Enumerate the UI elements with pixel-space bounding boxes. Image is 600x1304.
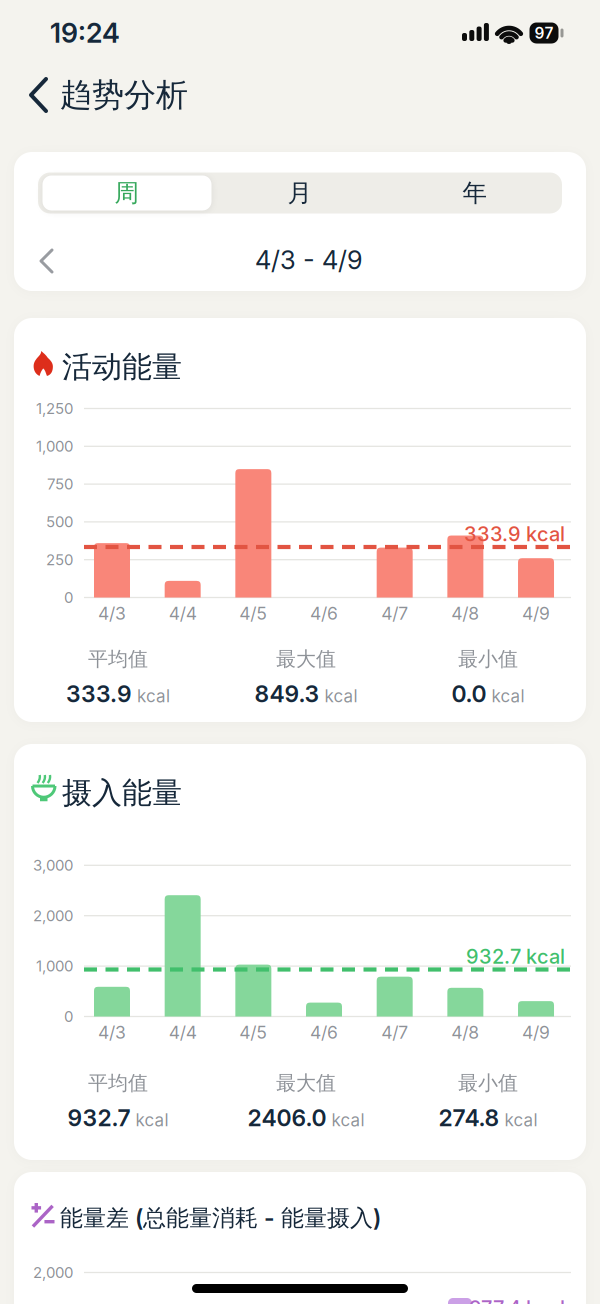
staticText: 274.8 [438,1104,499,1131]
staticText: 3,000 [33,856,73,874]
staticText: 4/4 [169,603,197,624]
staticText: kcal [504,1110,537,1130]
staticText: 4/3 - 4/9 [255,245,363,275]
staticText: 97 [534,24,553,42]
staticText: 0 [64,589,73,606]
staticText: 4/9 [522,1022,550,1043]
staticText: 趋势分析 [60,75,188,115]
staticText: 977.4 kcal [469,1296,565,1304]
staticText: 4/3 [98,603,126,624]
staticText: 4/4 [169,1022,197,1043]
staticText: 1,000 [36,437,73,455]
staticText: 1,000 [36,957,73,975]
staticText: kcal [135,1110,168,1130]
button[interactable]: 月 [215,172,385,213]
staticText: 333.9 [66,680,132,707]
staticText: 4/9 [522,603,550,624]
staticText: 932.7 kcal [466,945,565,968]
staticText: 4/8 [451,1022,479,1043]
staticText: 932.7 [67,1104,130,1131]
staticText: 月 [287,178,312,208]
staticText: 能量差 (总能量消耗 - 能量摄入) [60,1204,381,1232]
staticText: kcal [491,686,524,706]
staticText: 平均值 [88,647,148,671]
staticText: 750 [47,475,73,493]
staticText: 4/5 [239,603,267,624]
staticText: 4/3 [98,1022,126,1043]
staticText: kcal [324,686,357,706]
staticText: 4/6 [310,1022,338,1043]
button[interactable]: 年 [390,172,560,213]
staticText: 周 [114,178,139,208]
staticText: 4/8 [451,603,479,624]
staticText: 2406.0 [247,1104,326,1131]
staticText: 500 [46,513,73,531]
staticText: 年 [462,178,487,208]
staticText: 最小值 [458,647,518,671]
button[interactable]: 返回 [19,75,59,115]
staticText: 250 [46,551,73,569]
staticText: 0 [64,1008,73,1025]
staticText: 2,000 [33,907,73,925]
staticText: 849.3 [254,680,319,707]
staticText: 0.0 [451,680,486,707]
button[interactable]: 周 [42,175,211,210]
staticText: 1,250 [36,400,73,417]
staticText: 19:24 [50,17,120,49]
staticText: 333.9 kcal [464,522,565,546]
staticText: 4/6 [310,603,338,624]
staticText: 4/7 [381,603,408,624]
staticText: 摄入能量 [62,775,182,811]
staticText: 4/5 [239,1022,267,1043]
staticText: 4/7 [381,1022,408,1043]
staticText: 最小值 [458,1071,518,1095]
staticText: kcal [331,1110,364,1130]
staticText: 最大值 [276,1071,336,1095]
staticText: 平均值 [88,1071,148,1095]
staticText: 2,000 [33,1264,73,1281]
staticText: 最大值 [276,647,336,671]
staticText: kcal [137,686,170,706]
button[interactable]: 上一周 [28,243,64,279]
staticText: 活动能量 [62,349,182,385]
